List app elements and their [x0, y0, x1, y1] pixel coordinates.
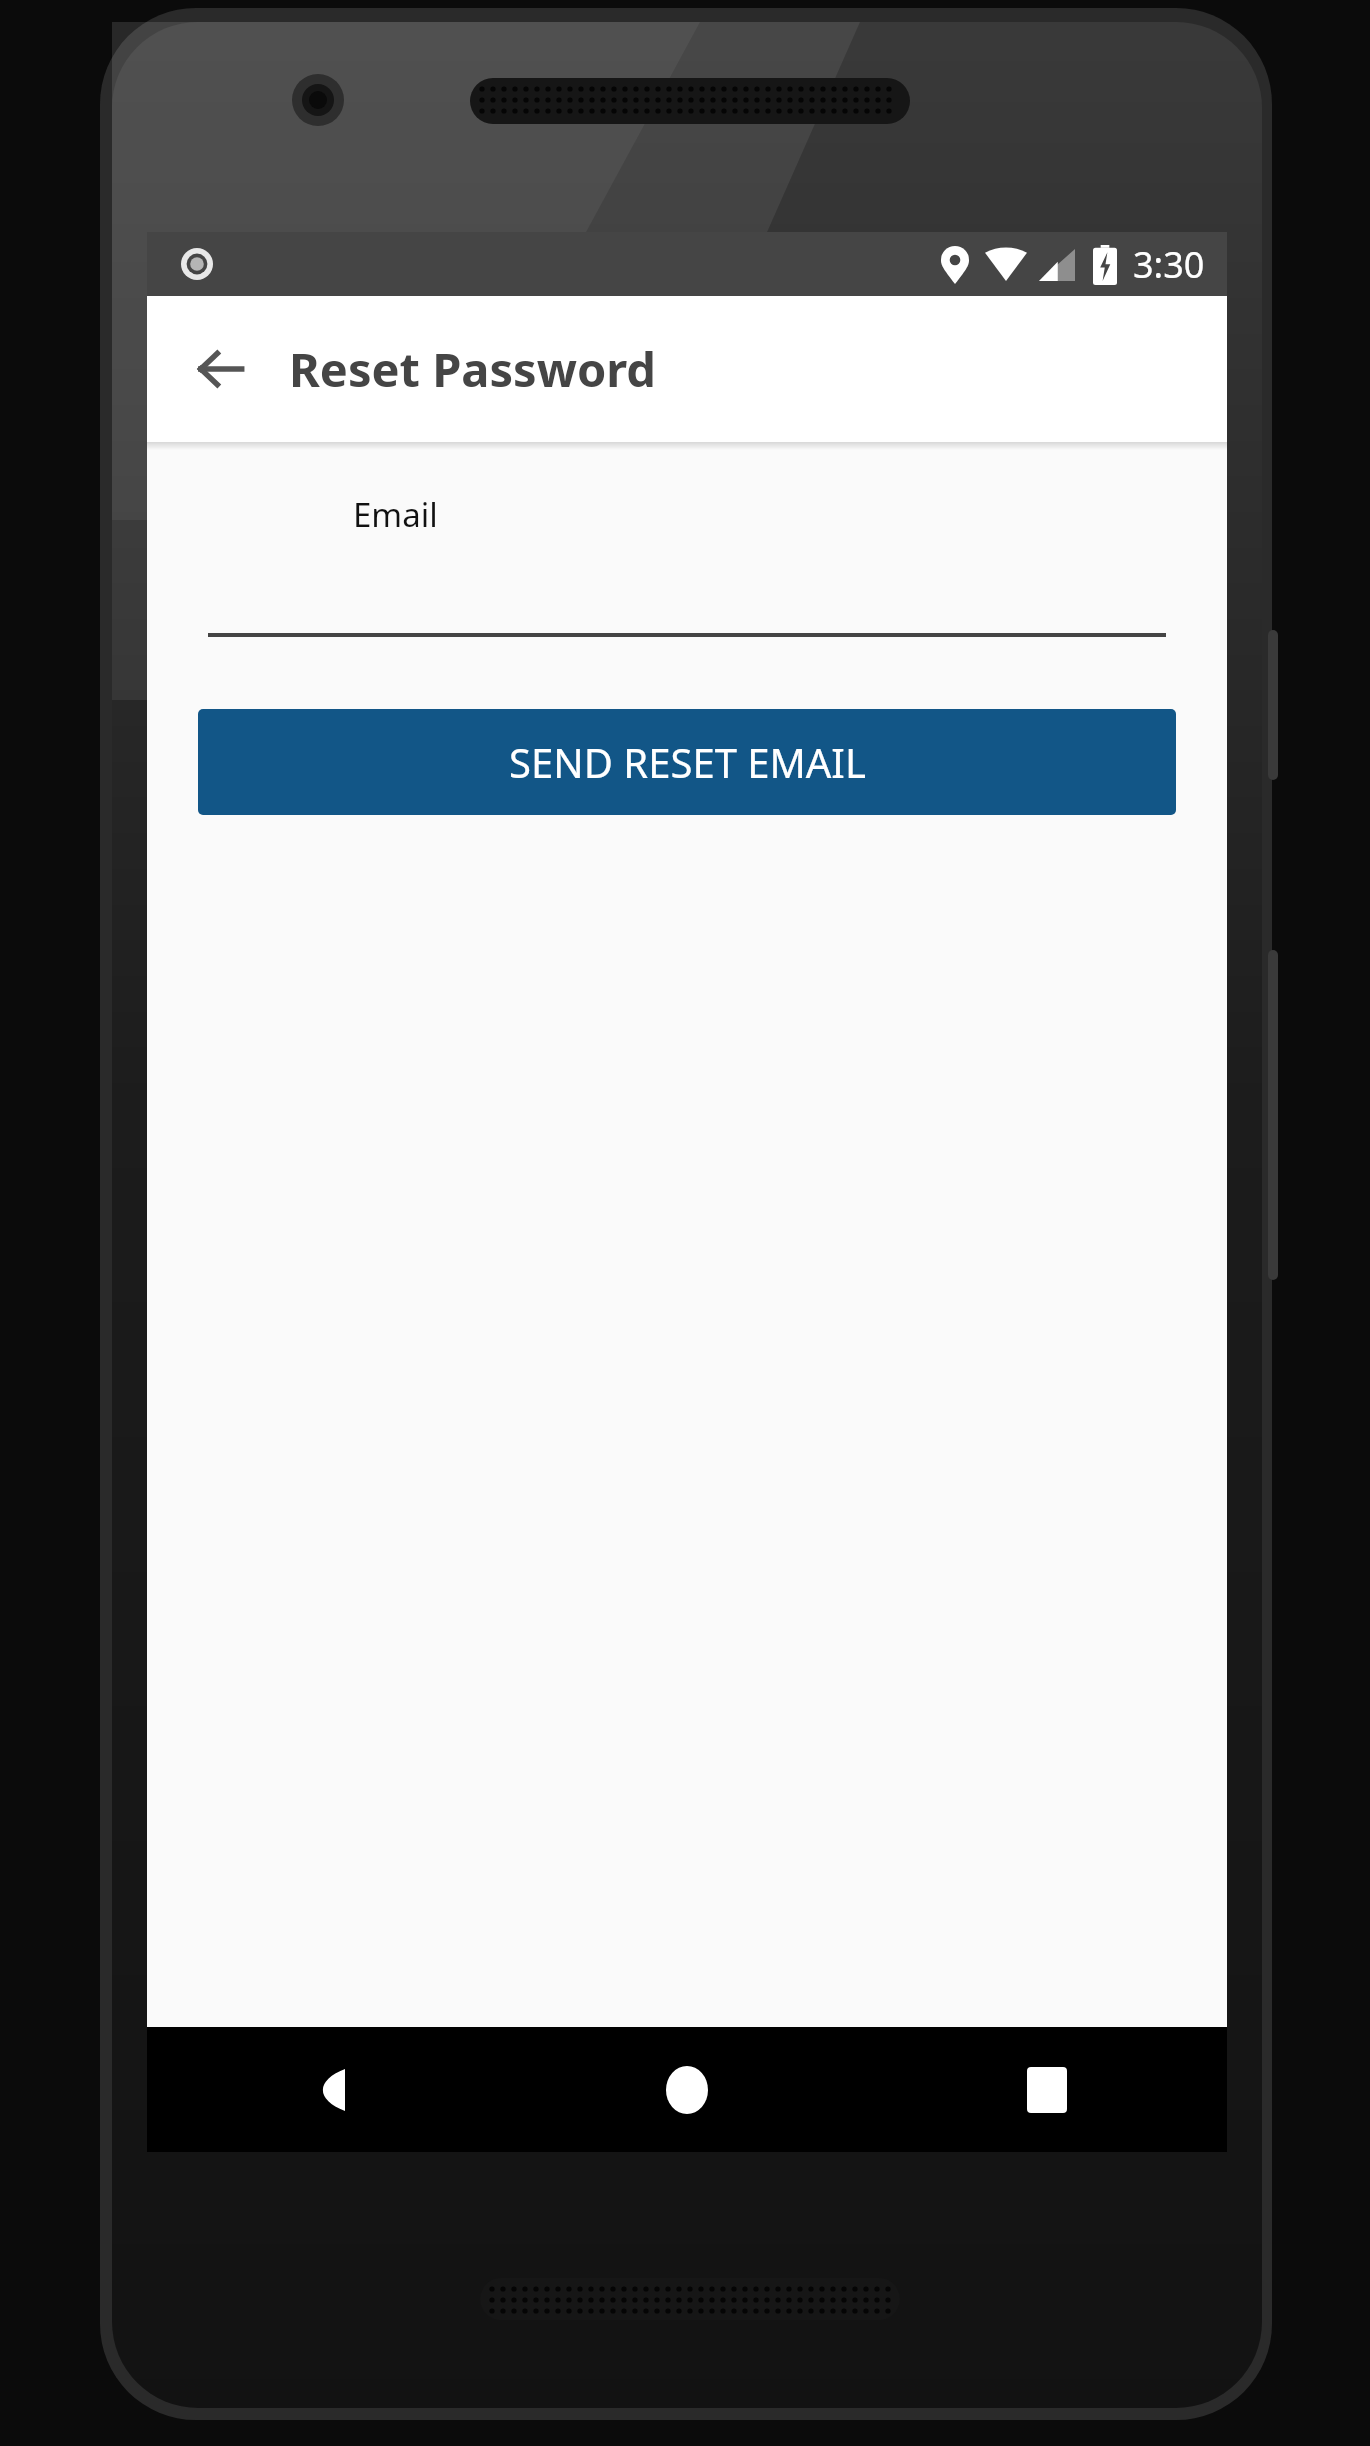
button[interactable]: Navigate up: [183, 331, 259, 407]
staticText: Reset Password: [289, 337, 657, 401]
staticText: Email: [353, 492, 438, 537]
button[interactable]: Back: [147, 2027, 507, 2152]
button[interactable]: [208, 597, 1166, 637]
button[interactable]: Home: [507, 2027, 867, 2152]
staticText: SEND RESET EMAIL: [509, 735, 866, 789]
staticText: 3:30: [1133, 240, 1205, 289]
button[interactable]: Recent apps: [867, 2027, 1227, 2152]
button[interactable]: SEND RESET EMAIL: [198, 709, 1176, 815]
